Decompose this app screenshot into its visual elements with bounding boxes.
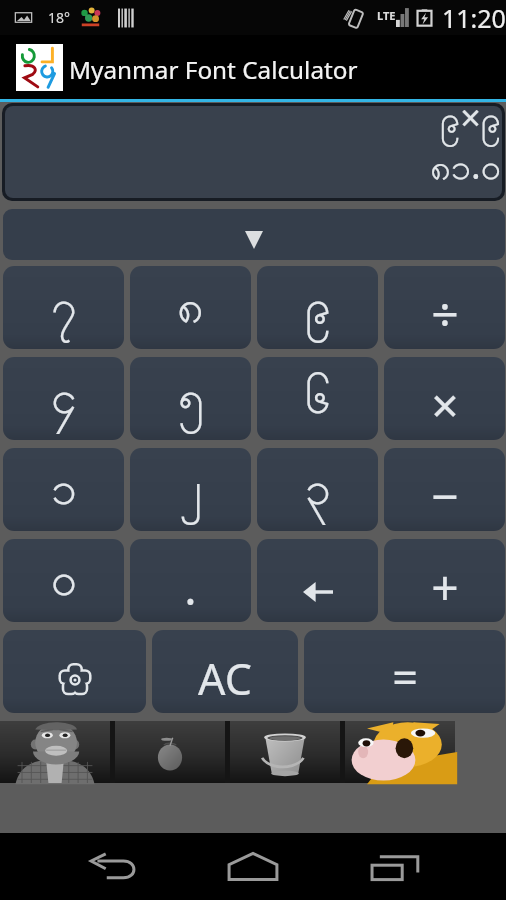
- button[interactable]: Backspace: [257, 539, 378, 622]
- button[interactable]: ၄: [3, 357, 124, 440]
- button[interactable]: Settings: [3, 630, 146, 713]
- button[interactable]: Back: [66, 833, 160, 900]
- staticText: ၅: [178, 368, 204, 436]
- staticText: ၉×၉: [439, 106, 501, 149]
- staticText: ၆: [305, 368, 331, 436]
- button[interactable]: ၀: [3, 539, 124, 622]
- staticText: Myanmar Font Calculator: [69, 53, 358, 86]
- staticText: AC: [198, 649, 252, 708]
- button[interactable]: Image 1: [115, 721, 225, 783]
- button[interactable]: Image 3: [345, 721, 455, 783]
- button[interactable]: ၂: [130, 448, 251, 531]
- button[interactable]: −: [384, 448, 505, 531]
- button[interactable]: ၉: [257, 266, 378, 349]
- button[interactable]: AC: [152, 630, 298, 713]
- staticText: ၃: [305, 459, 331, 527]
- staticText: ၈: [177, 277, 204, 345]
- button[interactable]: ၉×၉: [5, 106, 502, 198]
- button[interactable]: Image 2: [230, 721, 340, 783]
- staticText: .: [184, 556, 197, 619]
- staticText: ၁: [51, 459, 77, 527]
- button[interactable]: ၆: [257, 357, 378, 440]
- button[interactable]: Show history: [3, 209, 505, 260]
- staticText: 11:20: [442, 1, 506, 35]
- staticText: −: [431, 463, 459, 528]
- staticText: ၈၁.၀: [430, 141, 501, 197]
- button[interactable]: +: [384, 539, 505, 622]
- staticText: +: [431, 554, 459, 619]
- button[interactable]: Image 0: [0, 721, 110, 783]
- button[interactable]: .: [130, 539, 251, 622]
- staticText: ၂: [179, 459, 202, 527]
- button[interactable]: Recents: [350, 833, 444, 900]
- staticText: ၉: [305, 277, 331, 345]
- staticText: ၇: [51, 277, 77, 345]
- button[interactable]: ÷: [384, 266, 505, 349]
- button[interactable]: ၇: [3, 266, 124, 349]
- button[interactable]: Home: [206, 833, 300, 900]
- staticText: LTE: [377, 8, 396, 23]
- button[interactable]: =: [304, 630, 505, 713]
- button[interactable]: ၁: [3, 448, 124, 531]
- button[interactable]: ၃: [257, 448, 378, 531]
- staticText: ၄: [51, 368, 77, 436]
- staticText: =: [392, 646, 418, 707]
- staticText: ×: [431, 372, 459, 437]
- staticText: 18°: [48, 8, 71, 27]
- button[interactable]: ၅: [130, 357, 251, 440]
- staticText: ÷: [431, 281, 459, 346]
- button[interactable]: ၈: [130, 266, 251, 349]
- button[interactable]: ×: [384, 357, 505, 440]
- staticText: ၀: [51, 550, 77, 618]
